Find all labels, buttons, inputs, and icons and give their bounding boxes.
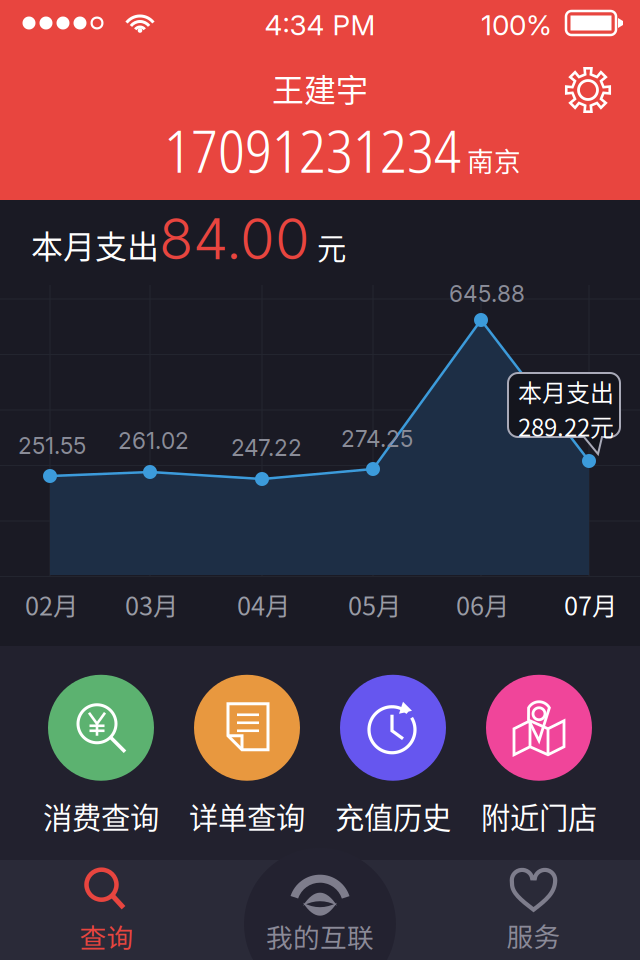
button[interactable]: 我的互联 (213, 860, 427, 960)
staticText: 附近门店 (481, 795, 597, 837)
staticText: 查询 (79, 917, 133, 955)
button[interactable]: 附近门店 (466, 675, 612, 837)
staticText: 详单查询 (189, 795, 305, 837)
button[interactable]: 详单查询 (174, 675, 320, 837)
staticText: 100% (481, 8, 552, 42)
staticText: 07月 (564, 586, 617, 623)
staticText: 05月 (348, 586, 401, 623)
staticText: 王建宇 (272, 65, 368, 111)
staticText: 03月 (125, 586, 178, 623)
staticText: 645.88 (449, 280, 525, 307)
staticText: 251.55 (18, 432, 86, 459)
staticText: 4:34 PM (264, 8, 375, 42)
staticText: 17091231234 (164, 110, 461, 190)
staticText: 289.22元 (518, 409, 614, 444)
staticText: 02月 (25, 586, 78, 623)
staticText: 06月 (456, 586, 509, 623)
staticText: 247.22 (231, 434, 302, 461)
button[interactable]: 充值历史 (320, 675, 466, 837)
staticText: 261.02 (118, 427, 189, 454)
staticText: 274.25 (341, 425, 413, 452)
staticText: 充值历史 (335, 795, 451, 837)
button[interactable]: 查询 (0, 860, 213, 960)
staticText: 服务 (506, 916, 560, 954)
button[interactable]: 消费查询 (28, 675, 174, 837)
staticText: 本月支出 (31, 221, 159, 268)
button[interactable]: 服务 (427, 860, 640, 960)
staticText: 我的互联 (266, 917, 374, 955)
staticText: 本月支出 (518, 374, 614, 409)
staticText: 南京 (467, 140, 521, 179)
staticText: 04月 (237, 586, 290, 623)
staticText: 消费查询 (43, 795, 159, 837)
staticText: 84.00 (159, 205, 310, 273)
staticText: 元 (317, 225, 346, 268)
button[interactable]: 设置 (560, 62, 616, 118)
